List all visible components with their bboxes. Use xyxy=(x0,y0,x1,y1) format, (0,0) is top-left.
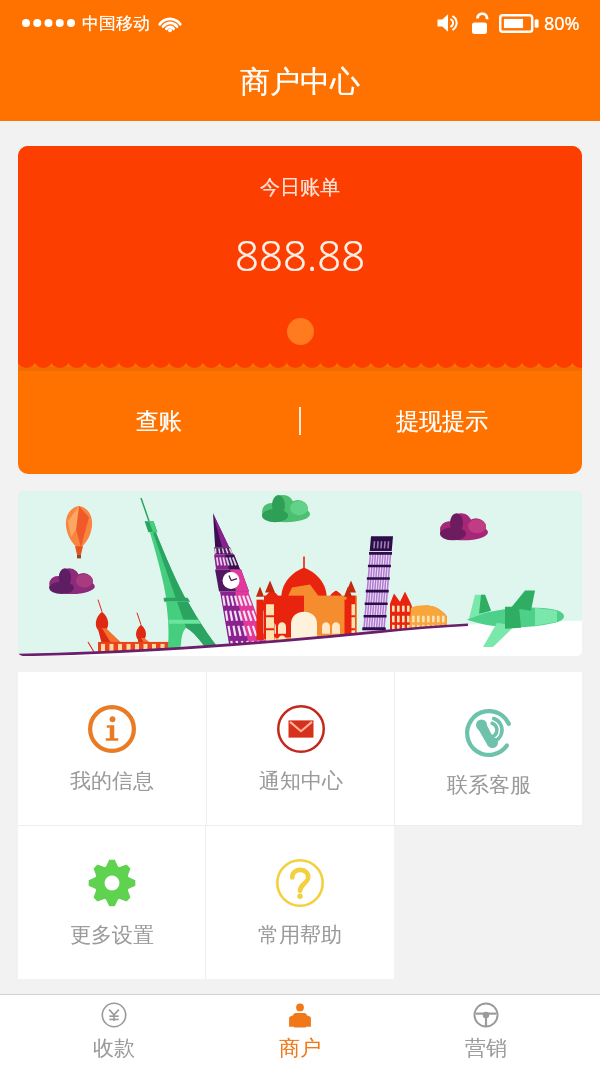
staticText: 中国移动 xyxy=(82,13,150,34)
staticText: 更多设置 xyxy=(70,922,154,948)
button[interactable]: 更多设置 xyxy=(18,826,205,979)
staticText: 常用帮助 xyxy=(258,922,342,948)
staticText: 我的信息 xyxy=(70,768,154,794)
staticText: 联系客服 xyxy=(447,772,531,798)
button[interactable]: 通知中心 xyxy=(207,672,394,825)
button[interactable]: 收款 xyxy=(21,995,207,1067)
staticText: 80% xyxy=(544,11,580,36)
button[interactable]: 提现提示 xyxy=(301,368,582,474)
button[interactable] xyxy=(18,491,582,656)
staticText: 收款 xyxy=(93,1035,135,1061)
staticText: 营销 xyxy=(465,1035,507,1061)
button[interactable]: 我的信息 xyxy=(18,672,206,825)
button[interactable]: 查账 xyxy=(18,368,299,474)
staticText: 查账 xyxy=(136,407,182,436)
staticText: 通知中心 xyxy=(259,768,343,794)
button[interactable]: 常用帮助 xyxy=(206,826,394,979)
staticText: 今日账单 xyxy=(260,175,340,200)
staticText: 商户中心 xyxy=(240,63,360,101)
button[interactable]: 联系客服 xyxy=(395,672,582,825)
button[interactable]: 今日账单 xyxy=(18,146,582,474)
staticText: 提现提示 xyxy=(396,407,488,436)
button[interactable]: 营销 xyxy=(393,995,579,1067)
staticText: 888.88 xyxy=(235,226,366,283)
button[interactable]: 商户 xyxy=(207,995,393,1067)
staticText: 商户 xyxy=(279,1035,321,1061)
